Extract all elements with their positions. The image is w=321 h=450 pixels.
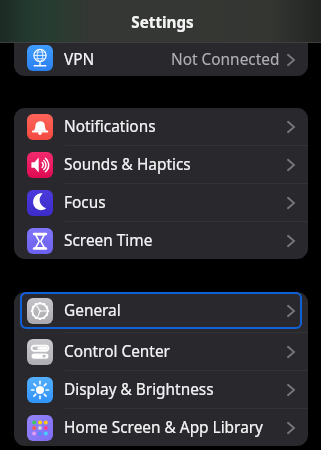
staticText: Notifications (64, 116, 156, 137)
button[interactable]: Home Screen & App Library (14, 409, 308, 446)
staticText: Control Center (64, 341, 170, 362)
button[interactable]: Screen Time (14, 222, 308, 259)
staticText: Settings (131, 12, 194, 33)
staticText: Display & Brightness (64, 379, 214, 400)
staticText: Not Connected (171, 49, 280, 70)
button[interactable]: Display & Brightness (14, 371, 308, 408)
button[interactable]: Notifications (14, 108, 308, 145)
staticText: Screen Time (64, 230, 153, 251)
button[interactable]: General (14, 292, 308, 329)
staticText: Home Screen & App Library (64, 417, 263, 438)
staticText: Sounds & Haptics (64, 154, 191, 175)
staticText: VPN (64, 49, 95, 70)
button[interactable]: VPN (14, 43, 308, 76)
button[interactable]: Control Center (14, 333, 308, 370)
staticText: General (64, 300, 121, 321)
staticText: Focus (64, 192, 106, 213)
button[interactable]: Sounds & Haptics (14, 146, 308, 183)
button[interactable]: Focus (14, 184, 308, 221)
